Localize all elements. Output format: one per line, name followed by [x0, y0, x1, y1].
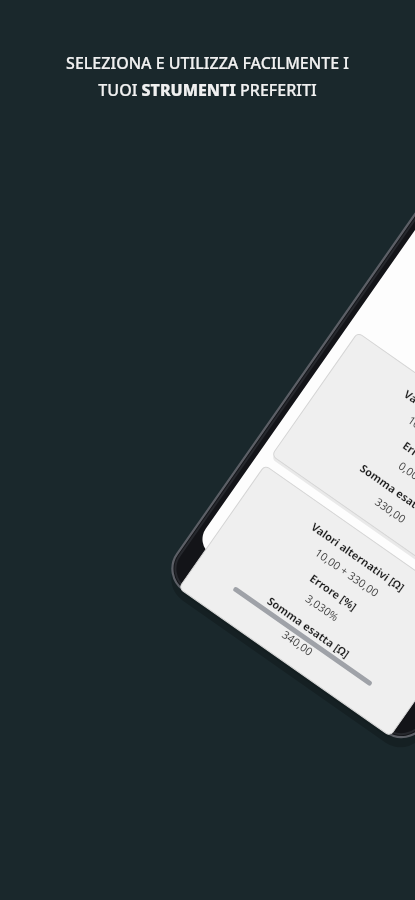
button[interactable]: Anteprima dell'app su smartphone [0, 0, 415, 900]
staticText: TUOI STRUMENTI PREFERITI [98, 79, 317, 101]
staticText: SELEZIONA E UTILIZZA FACILMENTE I [66, 52, 349, 74]
